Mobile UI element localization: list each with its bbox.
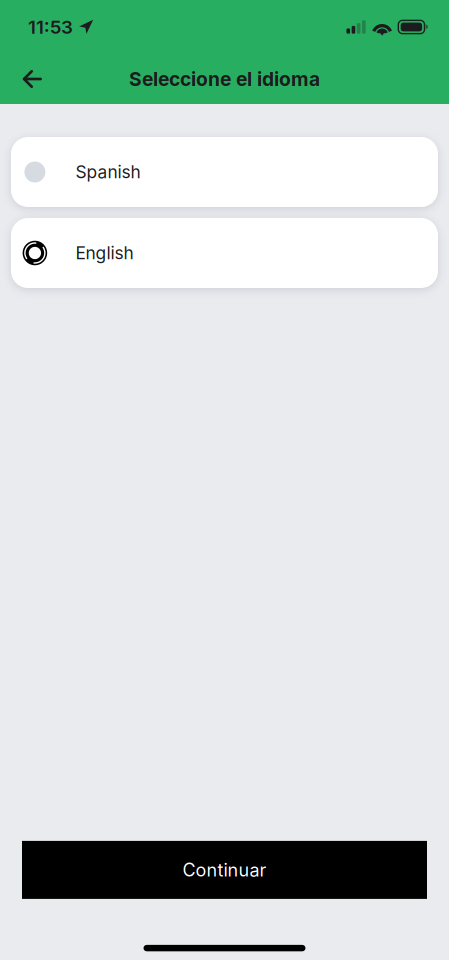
staticText: Continuar	[182, 859, 266, 881]
staticText: 11:53	[28, 16, 73, 38]
staticText: Spanish	[75, 161, 140, 182]
button[interactable]: English	[11, 218, 438, 288]
button[interactable]: Spanish	[11, 137, 438, 207]
button[interactable]: Back	[10, 57, 54, 101]
staticText: Seleccione el idioma	[129, 67, 320, 91]
staticText: English	[75, 242, 133, 263]
button[interactable]: Continuar	[22, 841, 427, 899]
